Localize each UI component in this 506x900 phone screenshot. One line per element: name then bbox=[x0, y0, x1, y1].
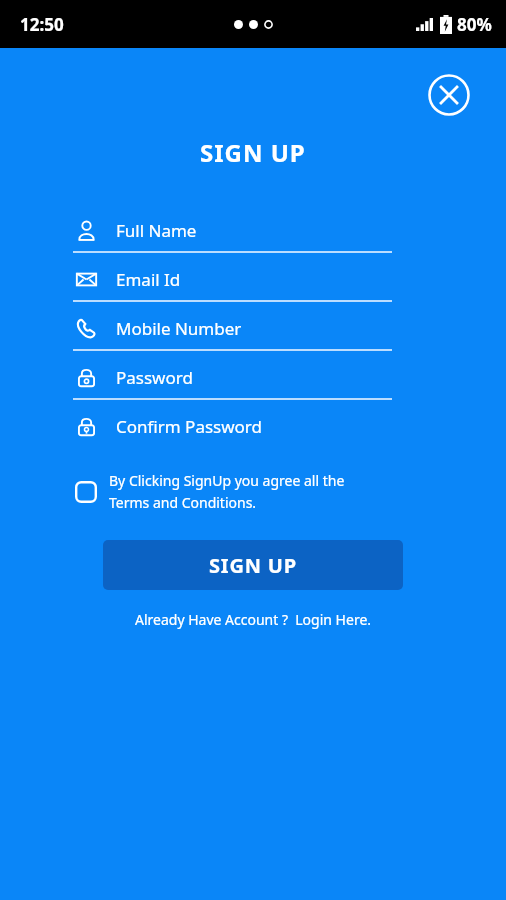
button[interactable]: Confirm Password bbox=[73, 413, 392, 449]
staticText: 80% bbox=[457, 13, 492, 36]
button[interactable]: Password bbox=[73, 364, 392, 400]
staticText: Already Have Account ? Login Here. bbox=[135, 610, 372, 629]
button[interactable]: By Clicking SignUp you agree all the bbox=[73, 471, 466, 512]
staticText: Password bbox=[116, 366, 193, 389]
staticText: SIGN UP bbox=[209, 552, 297, 579]
staticText: Email Id bbox=[116, 268, 181, 291]
staticText: Mobile Number bbox=[116, 317, 242, 340]
button[interactable]: Close bbox=[428, 74, 470, 116]
button[interactable]: Email Id bbox=[73, 266, 392, 302]
staticText: Confirm Password bbox=[116, 415, 262, 438]
staticText: 12:50 bbox=[20, 13, 64, 36]
button[interactable]: Mobile Number bbox=[73, 315, 392, 351]
staticText: SIGN UP bbox=[200, 136, 306, 169]
staticText: By Clicking SignUp you agree all the bbox=[109, 471, 345, 490]
staticText: Full Name bbox=[116, 219, 197, 242]
button[interactable]: SIGN UP bbox=[103, 540, 403, 590]
button[interactable]: Already Have Account ? Login Here. bbox=[127, 608, 380, 631]
button[interactable]: Full Name bbox=[73, 217, 392, 253]
staticText: Terms and Conditions. bbox=[109, 493, 257, 512]
